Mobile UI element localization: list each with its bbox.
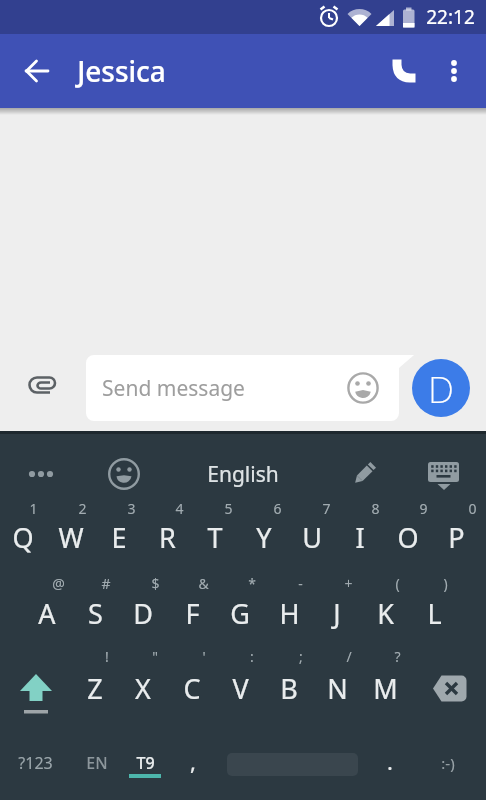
button[interactable] (101, 452, 147, 496)
staticText: " (152, 647, 158, 666)
staticText: A (38, 595, 56, 632)
staticText: 3 (127, 499, 136, 518)
button[interactable]: English (193, 452, 293, 496)
button[interactable]: , (143, 739, 243, 783)
staticText: * (248, 574, 256, 593)
staticText: 22:12 (426, 4, 475, 30)
button[interactable]: Send message (86, 355, 399, 421)
staticText: H (279, 595, 300, 632)
staticText: Jessica (77, 52, 166, 90)
staticText: X (135, 670, 151, 707)
button[interactable]: B (239, 666, 339, 710)
button[interactable]: W (21, 515, 121, 559)
staticText: 1 (29, 499, 38, 518)
button[interactable]: M (335, 666, 435, 710)
button[interactable]: Z (45, 666, 145, 710)
staticText: W (58, 519, 84, 556)
staticText: R (159, 519, 176, 556)
staticText: B (280, 670, 298, 707)
staticText: English (207, 460, 279, 489)
staticText: . (387, 746, 393, 776)
button[interactable]: I (310, 515, 410, 559)
button[interactable]: N (287, 666, 387, 710)
button[interactable]: T9 (95, 741, 195, 785)
staticText: L (427, 595, 442, 632)
button[interactable]: :-) (398, 741, 486, 785)
button[interactable]: T (165, 515, 265, 559)
staticText: ? (394, 647, 401, 666)
button[interactable]: F (142, 591, 242, 635)
button[interactable] (17, 362, 69, 414)
button[interactable]: H (239, 591, 339, 635)
staticText: I (355, 519, 365, 556)
button[interactable]: E (69, 515, 169, 559)
button[interactable]: ?123 (0, 741, 85, 785)
staticText: Q (12, 519, 34, 556)
staticText: , (190, 746, 196, 776)
button[interactable]: G (190, 591, 290, 635)
button[interactable]: P (406, 515, 486, 559)
staticText: Send message (102, 374, 245, 403)
staticText: P (448, 519, 465, 556)
staticText: # (101, 574, 111, 593)
staticText: ; (299, 647, 303, 666)
button[interactable]: R (117, 515, 217, 559)
staticText: @ (52, 574, 65, 593)
staticText: 5 (224, 499, 233, 518)
staticText: ( (395, 574, 400, 593)
staticText: U (302, 519, 322, 556)
staticText: & (198, 574, 209, 593)
staticText: 2 (78, 499, 87, 518)
staticText: 8 (371, 499, 380, 518)
staticText: F (185, 595, 200, 632)
staticText: S (88, 595, 103, 632)
button[interactable] (432, 49, 476, 93)
button[interactable] (341, 452, 387, 496)
staticText: T (207, 519, 223, 556)
staticText: 6 (273, 499, 282, 518)
staticText: / (346, 647, 352, 666)
button[interactable]: O (358, 515, 458, 559)
button[interactable] (18, 452, 64, 496)
staticText: : (250, 647, 254, 666)
staticText: K (377, 595, 394, 632)
staticText: C (183, 670, 201, 707)
staticText: 9 (419, 499, 428, 518)
button[interactable]: X (93, 666, 193, 710)
button[interactable] (347, 372, 379, 404)
staticText: ! (105, 647, 109, 666)
staticText: E (111, 519, 127, 556)
button[interactable]: A (0, 591, 97, 635)
button[interactable] (12, 666, 60, 718)
button[interactable] (15, 49, 59, 93)
staticText: O (397, 519, 419, 556)
button[interactable] (382, 49, 426, 93)
button[interactable]: C (142, 666, 242, 710)
button[interactable]: U (262, 515, 362, 559)
button[interactable] (425, 671, 473, 707)
button[interactable]: L (384, 591, 484, 635)
button[interactable]: D (93, 591, 193, 635)
staticText: G (230, 595, 250, 632)
staticText: 7 (322, 499, 331, 518)
staticText: D (428, 363, 454, 413)
staticText: Y (256, 519, 272, 556)
button[interactable]: J (287, 591, 387, 635)
button[interactable]: V (190, 666, 290, 710)
button[interactable]: . (340, 739, 440, 783)
staticText: ' (202, 647, 206, 666)
staticText: T9 (136, 752, 155, 774)
button[interactable] (421, 452, 467, 496)
staticText: EN (86, 752, 108, 774)
staticText: M (373, 670, 398, 707)
button[interactable]: Y (214, 515, 314, 559)
staticText: 0 (468, 499, 477, 518)
button[interactable]: Q (0, 515, 73, 559)
button[interactable]: D (412, 359, 470, 417)
button[interactable]: S (45, 591, 145, 635)
staticText: + (344, 574, 353, 593)
button[interactable]: K (335, 591, 435, 635)
staticText: N (327, 670, 348, 707)
button[interactable]: EN (47, 741, 147, 785)
